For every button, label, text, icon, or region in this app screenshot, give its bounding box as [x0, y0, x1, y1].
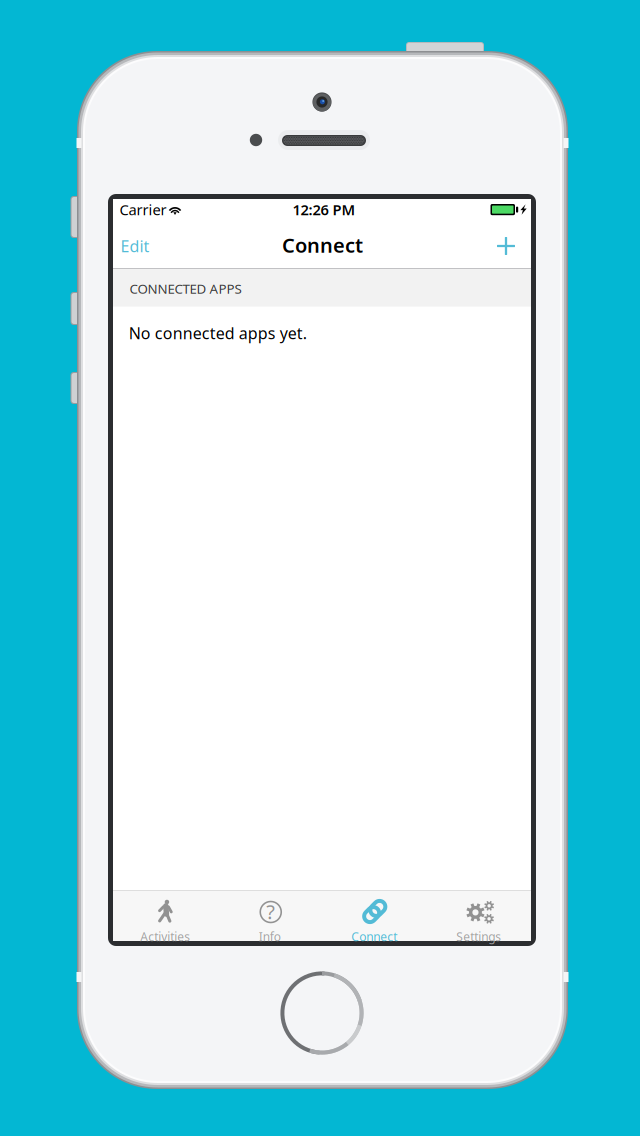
staticText: CONNECTED APPS: [130, 280, 242, 297]
staticText: ?: [266, 898, 275, 925]
staticText: Activities: [140, 928, 190, 944]
button[interactable]: Add: [484, 224, 528, 268]
staticText: 12:26 PM: [292, 200, 355, 219]
staticText: Settings: [456, 928, 501, 944]
button[interactable]: Activities: [113, 891, 217, 941]
button[interactable]: Settings: [426, 891, 531, 941]
staticText: Connect: [351, 928, 397, 944]
button[interactable]: ?: [217, 891, 322, 941]
staticText: Edit: [120, 235, 149, 257]
staticText: Info: [259, 928, 281, 944]
staticText: No connected apps yet.: [129, 322, 307, 344]
staticText: Carrier: [119, 200, 166, 219]
button[interactable]: Connect: [322, 891, 426, 941]
staticText: Connect: [282, 232, 363, 258]
button[interactable]: Edit: [113, 224, 171, 268]
